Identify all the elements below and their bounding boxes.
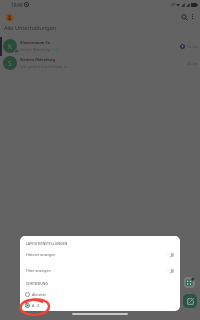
button[interactable]: A - Z xyxy=(20,300,180,311)
staticText: SORTIERUNG xyxy=(26,281,49,286)
staticText: Siemen Oldenburg: xyxy=(20,47,52,52)
staticText: 24. Jun. xyxy=(187,61,199,66)
staticText: 19:46 xyxy=(11,2,23,8)
button[interactable]: Search xyxy=(178,11,190,23)
staticText: Historie anzeigen xyxy=(26,252,56,257)
staticText: Aktivität xyxy=(32,292,46,297)
staticText: Sehr geehrte Frau Schmidt, w xyxy=(20,64,67,69)
button[interactable]: New conversation xyxy=(183,294,197,308)
staticText: Test xyxy=(52,47,59,52)
button[interactable]: Aktivität xyxy=(20,289,180,300)
staticText: Siemen Oldenburg xyxy=(20,57,56,62)
staticText: Klassenraum 5a xyxy=(20,40,50,45)
button[interactable]: Profile xyxy=(6,14,13,21)
staticText: 24. Jun. xyxy=(187,44,199,49)
button[interactable]: Filter anzeigen xyxy=(20,266,180,275)
staticText: LAYOUTEINSTELLUNGEN xyxy=(26,241,68,246)
staticText: Alle Unterhaltungen xyxy=(4,24,57,31)
button[interactable]: Scan code xyxy=(184,277,195,288)
staticText: K xyxy=(8,42,13,51)
button[interactable]: More options xyxy=(187,11,198,22)
staticText: S xyxy=(8,59,12,68)
button[interactable]: S xyxy=(0,54,200,72)
button[interactable]: K xyxy=(0,37,200,55)
staticText: A - Z xyxy=(32,303,40,308)
button[interactable]: Historie anzeigen xyxy=(20,250,180,259)
staticText: Filter anzeigen xyxy=(26,268,51,273)
